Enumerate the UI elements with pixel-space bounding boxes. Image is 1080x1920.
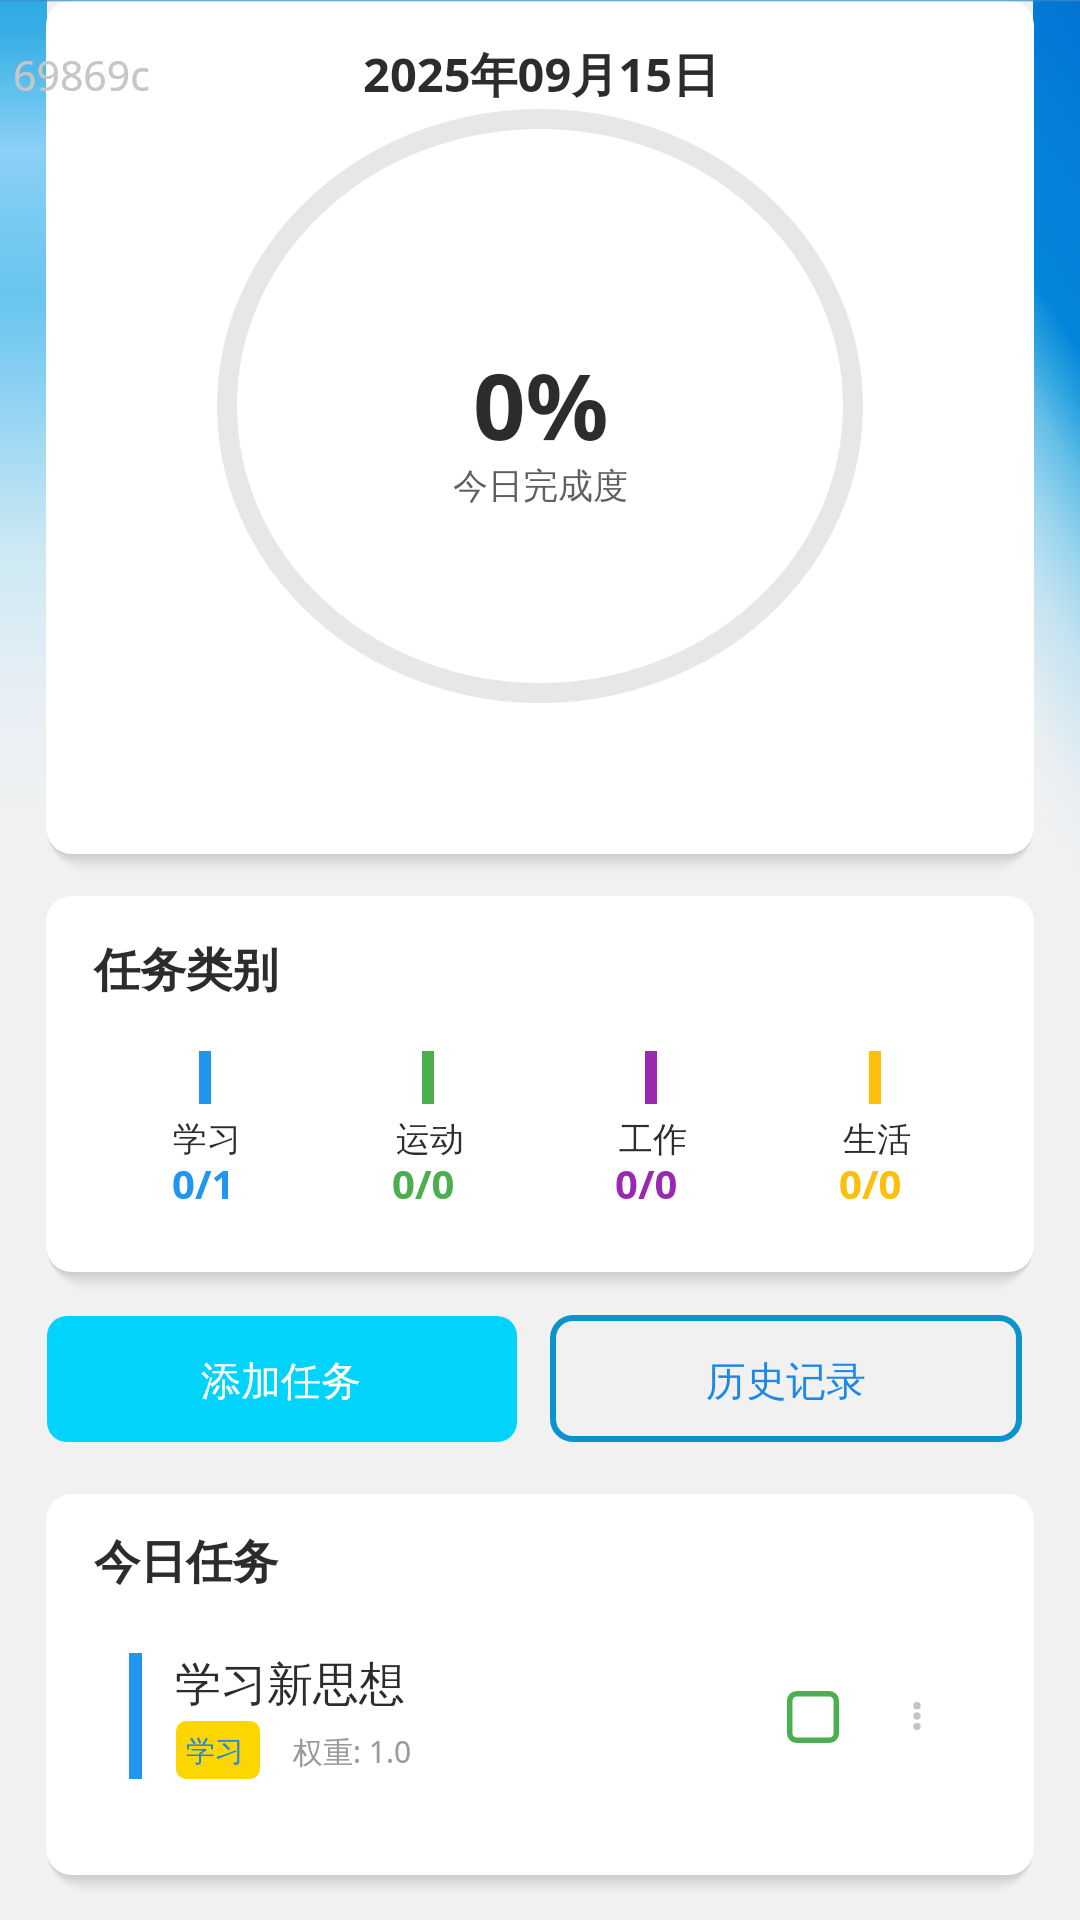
staticText: 0% [473,342,609,467]
staticText: 2025年09月15日 [363,42,720,106]
staticText: 学习 [173,1118,241,1161]
button[interactable]: Mark task complete [787,1691,839,1743]
staticText: 权重: 1.0 [293,1731,412,1772]
staticText: 0/0 [839,1156,902,1210]
staticText: 添加任务 [201,1356,361,1406]
staticText: 历史记录 [706,1356,866,1406]
staticText: 69869c [13,47,150,103]
staticText: 今日任务 [94,1534,278,1592]
button[interactable]: 生活 [775,1031,975,1206]
staticText: 任务类别 [94,942,278,1000]
staticText: 学习新思想 [175,1656,405,1714]
button[interactable]: 运动 [328,1031,528,1206]
button[interactable]: 添加任务 [47,1316,517,1442]
button[interactable]: 历史记录 [550,1315,1022,1442]
staticText: 今日完成度 [453,464,628,508]
staticText: 运动 [396,1118,464,1161]
button[interactable]: 学习新思想 [106,1639,974,1789]
staticText: 学习 [186,1733,244,1770]
button[interactable]: 学习 [105,1031,305,1206]
staticText: 0/0 [615,1156,678,1210]
staticText: 工作 [619,1118,687,1161]
staticText: 生活 [843,1118,911,1161]
staticText: 0/1 [172,1156,235,1210]
button[interactable]: More options [891,1684,943,1748]
button[interactable]: 工作 [551,1031,751,1206]
staticText: 0/0 [392,1156,455,1210]
